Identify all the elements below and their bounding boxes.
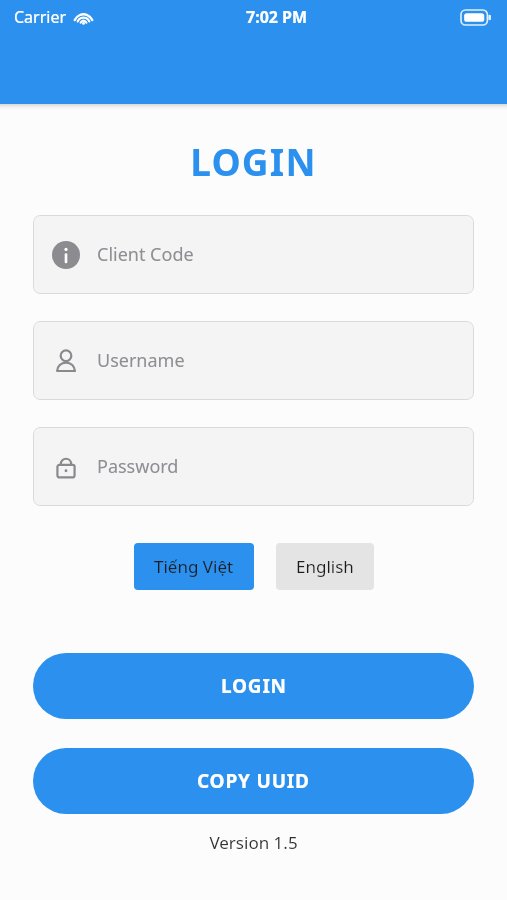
staticText: LOGIN — [0, 136, 507, 186]
staticText: Client Code — [97, 242, 194, 267]
button[interactable]: LOGIN — [33, 653, 474, 719]
button[interactable]: COPY UUID — [33, 748, 474, 814]
staticText: LOGIN — [221, 673, 287, 699]
button[interactable]: Tiếng Việt — [134, 543, 254, 590]
button[interactable]: Client Code — [33, 215, 474, 294]
staticText: Username — [97, 348, 185, 373]
button[interactable]: Password — [33, 427, 474, 506]
button[interactable]: Username — [33, 321, 474, 400]
staticText: English — [296, 555, 354, 578]
staticText: Password — [97, 454, 179, 479]
staticText: Carrier — [14, 6, 67, 28]
staticText: COPY UUID — [197, 768, 310, 794]
staticText: 7:02 PM — [246, 6, 308, 28]
button[interactable]: English — [276, 543, 374, 590]
staticText: Tiếng Việt — [154, 555, 234, 578]
staticText: Version 1.5 — [0, 831, 507, 854]
